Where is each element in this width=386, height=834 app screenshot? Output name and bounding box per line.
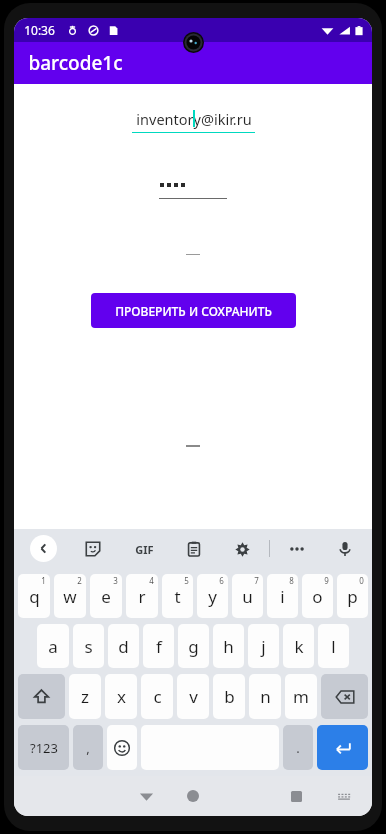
staticText: ПРОВЕРИТЬ И СОХРАНИТЬ: [115, 303, 272, 319]
staticText: h: [223, 635, 234, 658]
staticText: p: [347, 585, 358, 608]
staticText: 5: [184, 575, 189, 586]
staticText: ?123: [30, 739, 58, 757]
staticText: j: [261, 635, 266, 658]
staticText: d: [118, 635, 129, 658]
button[interactable]: Emoji: [107, 725, 137, 770]
button[interactable]: d: [108, 624, 139, 668]
staticText: x: [117, 685, 126, 708]
staticText: n: [260, 685, 271, 708]
button[interactable]: Back: [129, 779, 163, 813]
button[interactable]: k: [283, 624, 314, 668]
staticText: barcode1c: [28, 50, 123, 76]
staticText: s: [84, 635, 93, 658]
staticText: i: [280, 585, 285, 608]
button[interactable]: Voice input: [332, 536, 358, 562]
button[interactable]: m: [285, 674, 317, 719]
button[interactable]: n: [249, 674, 281, 719]
staticText: v: [189, 685, 198, 708]
staticText: z: [81, 685, 89, 708]
button[interactable]: ПРОВЕРИТЬ И СОХРАНИТЬ: [91, 293, 296, 328]
staticText: y: [208, 585, 217, 608]
button[interactable]: Back: [30, 535, 57, 562]
button[interactable]: More options: [284, 536, 310, 562]
staticText: w: [63, 585, 77, 608]
staticText: o: [312, 585, 323, 608]
button[interactable]: p: [337, 574, 368, 618]
button[interactable]: v: [177, 674, 209, 719]
button[interactable]: ,: [73, 725, 103, 770]
button[interactable]: g: [178, 624, 209, 668]
button[interactable]: ?123: [18, 725, 69, 770]
button[interactable]: e: [90, 574, 122, 618]
staticText: l: [331, 635, 336, 658]
staticText: b: [224, 685, 235, 708]
button[interactable]: b: [213, 674, 245, 719]
staticText: t: [174, 585, 181, 608]
button[interactable]: Switch keyboard: [330, 782, 358, 810]
staticText: q: [29, 585, 40, 608]
button[interactable]: Stickers: [80, 536, 106, 562]
button[interactable]: f: [143, 624, 174, 668]
staticText: c: [153, 685, 162, 708]
button[interactable]: Shift: [18, 674, 65, 719]
button[interactable]: .: [283, 725, 313, 770]
staticText: u: [242, 585, 253, 608]
staticText: r: [138, 585, 146, 608]
button[interactable]: y: [197, 574, 228, 618]
button[interactable]: Settings: [229, 536, 255, 562]
button[interactable]: c: [141, 674, 173, 719]
button[interactable]: h: [213, 624, 244, 668]
staticText: inventory@ikir.ru: [136, 109, 252, 129]
staticText: 1: [41, 575, 46, 586]
button[interactable]: GIF: [129, 534, 159, 564]
staticText: e: [101, 585, 111, 608]
staticText: 3: [113, 575, 118, 586]
button[interactable]: Home: [176, 779, 210, 813]
button[interactable]: Enter: [317, 725, 368, 770]
staticText: k: [294, 635, 304, 658]
button[interactable]: u: [232, 574, 263, 618]
button[interactable]: Recent apps: [279, 779, 313, 813]
staticText: g: [188, 635, 199, 658]
button[interactable]: t: [162, 574, 193, 618]
button[interactable]: Clipboard: [181, 536, 207, 562]
staticText: a: [48, 635, 58, 658]
staticText: 10:36: [24, 22, 55, 38]
staticText: 4: [149, 575, 154, 586]
staticText: 7: [254, 575, 259, 586]
button[interactable]: a: [37, 624, 69, 668]
staticText: ,: [86, 739, 90, 757]
button[interactable]: o: [302, 574, 333, 618]
button[interactable]: w: [54, 574, 86, 618]
button[interactable]: r: [126, 574, 158, 618]
staticText: 9: [324, 575, 329, 586]
staticText: 2: [77, 575, 82, 586]
button[interactable]: i: [267, 574, 298, 618]
button[interactable]: x: [105, 674, 137, 719]
button[interactable]: Backspace: [321, 674, 368, 719]
button[interactable]: inventory@ikir.ru: [132, 109, 255, 133]
staticText: 8: [289, 575, 294, 586]
staticText: 6: [219, 575, 224, 586]
staticText: .: [296, 739, 300, 757]
button[interactable]: [159, 177, 227, 199]
button[interactable]: s: [73, 624, 104, 668]
button[interactable]: j: [248, 624, 279, 668]
staticText: m: [293, 685, 309, 708]
staticText: GIF: [135, 542, 154, 557]
staticText: 0: [359, 575, 364, 586]
button[interactable]: l: [318, 624, 349, 668]
staticText: f: [156, 635, 162, 658]
button[interactable]: z: [69, 674, 101, 719]
button[interactable]: q: [18, 574, 50, 618]
